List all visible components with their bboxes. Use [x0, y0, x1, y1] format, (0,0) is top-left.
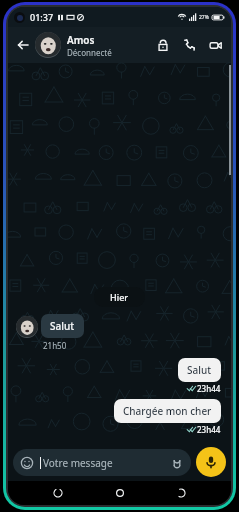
button[interactable]: Home [109, 482, 131, 504]
button[interactable]: Back [170, 482, 192, 504]
button[interactable]: Voice call [178, 34, 200, 56]
staticText: Déconnecté [67, 47, 112, 58]
button[interactable]: Amos [35, 32, 152, 58]
button[interactable]: Hier [94, 287, 145, 307]
staticText: 23h44 [197, 383, 221, 394]
button[interactable]: Record voice message [196, 447, 226, 477]
staticText: Amos [67, 33, 95, 47]
button[interactable]: Back [13, 35, 33, 55]
button[interactable]: Chargée mon cher [114, 399, 221, 423]
staticText: Votre message [43, 456, 170, 470]
button[interactable]: Salut [178, 358, 221, 382]
staticText: 27% [199, 14, 209, 21]
staticText: 23h44 [197, 424, 221, 435]
button[interactable]: Votre message [13, 449, 191, 476]
staticText: Salut [50, 319, 75, 333]
button[interactable]: Salut [41, 314, 84, 338]
button[interactable]: Video call [204, 34, 226, 56]
staticText: Chargée mon cher [123, 404, 212, 418]
staticText: 01:37 [30, 11, 54, 23]
button[interactable]: Encryption [152, 34, 174, 56]
staticText: 21h50 [43, 340, 67, 351]
staticText: Salut [187, 363, 212, 377]
button[interactable]: Recent apps [47, 482, 69, 504]
staticText: Hier [110, 291, 129, 303]
